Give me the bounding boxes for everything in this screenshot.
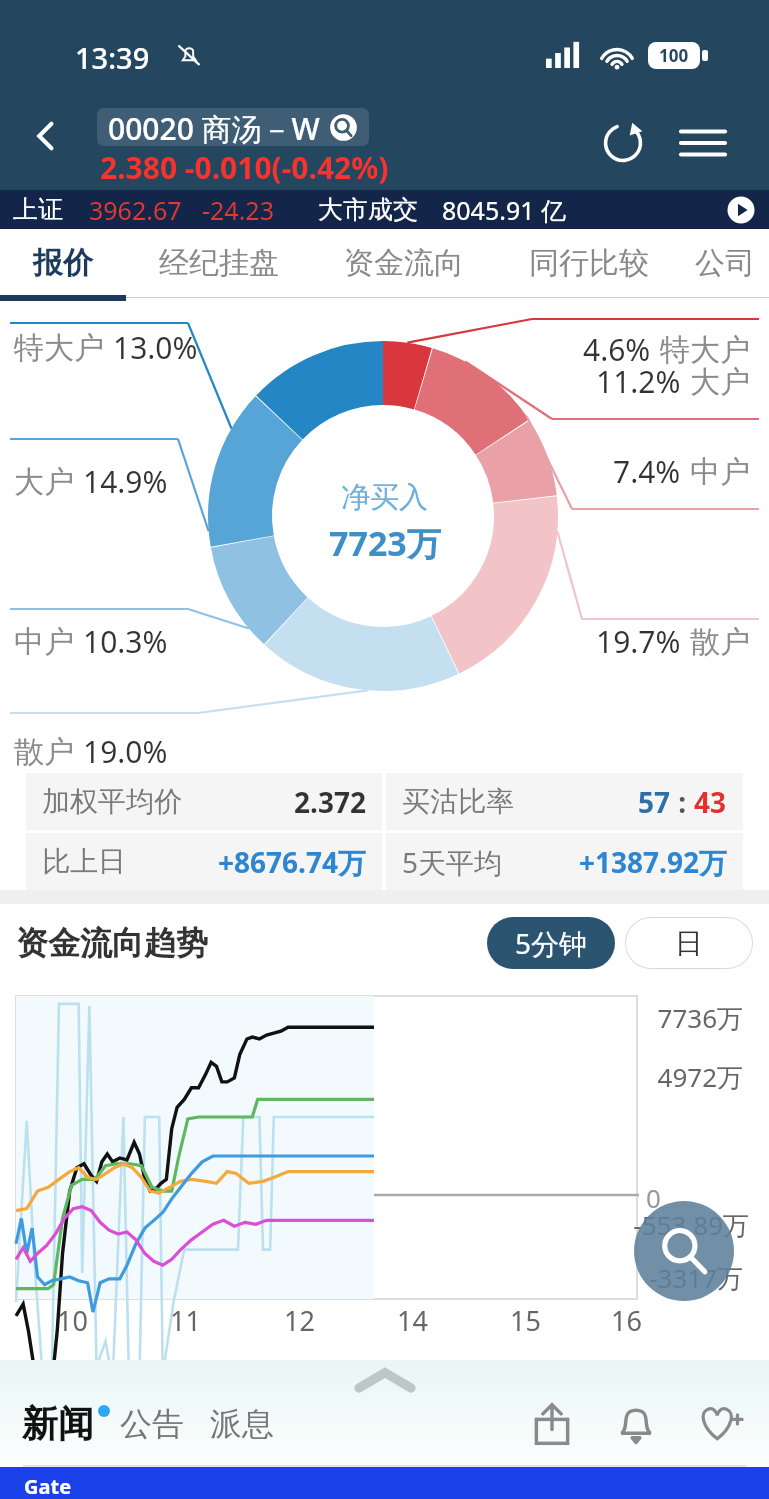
staticText: 2.372 [294, 783, 366, 821]
staticText: 公司 [695, 244, 755, 282]
button[interactable]: Refresh [592, 112, 654, 174]
staticText: 7.4% [613, 451, 681, 492]
button[interactable]: Share [521, 1393, 583, 1455]
staticText: 资金流向 [344, 244, 464, 282]
staticText: 新闻 [22, 1401, 94, 1446]
staticText: 7736万 [0, 1000, 743, 1036]
staticText: 19.7% [596, 621, 681, 662]
staticText: -24.23 [202, 193, 274, 227]
button[interactable]: 新闻 [22, 1401, 94, 1446]
staticText: -3317万 [0, 1260, 743, 1296]
staticText: 11 [170, 1302, 201, 1339]
button[interactable]: 加权平均价 [26, 773, 382, 830]
button[interactable]: 资金流向 [311, 229, 496, 297]
staticText: 大户 [690, 363, 750, 401]
staticText: 净买入 [341, 479, 428, 516]
staticText: 比上日 [42, 844, 126, 879]
staticText: 43 [694, 783, 727, 821]
button[interactable]: Back [18, 108, 74, 164]
staticText: 13:39 [75, 38, 150, 77]
staticText: -553.89万 [0, 1207, 749, 1243]
staticText: 上证 [13, 194, 63, 225]
staticText: Gate [24, 1473, 72, 1499]
staticText: 16 [611, 1302, 642, 1339]
staticText: : [671, 783, 694, 821]
staticText: 15 [510, 1302, 541, 1339]
staticText: 特大户 [660, 331, 750, 369]
staticText: 报价 [33, 244, 93, 282]
button[interactable]: 公告 [120, 1404, 184, 1444]
staticText: 57 [638, 783, 671, 821]
button[interactable]: 派息 [210, 1404, 274, 1444]
staticText: 加权平均价 [42, 784, 182, 819]
staticText: 8045.91 亿 [442, 193, 567, 227]
staticText: 5天平均 [402, 843, 503, 881]
staticText: 7723万 [329, 520, 441, 566]
staticText: +1387.92万 [579, 843, 727, 881]
staticText: 100 [659, 44, 689, 67]
staticText: 散户 [690, 623, 750, 661]
staticText: 12 [284, 1302, 315, 1339]
button[interactable]: 报价 [0, 229, 126, 297]
button[interactable]: Search [634, 1201, 734, 1301]
button[interactable]: 5天平均 [386, 833, 743, 890]
button[interactable]: Menu [672, 112, 734, 174]
staticText: 大市成交 [318, 194, 418, 225]
staticText: 5分钟 [515, 924, 588, 962]
button[interactable]: Add to watchlist [689, 1393, 751, 1455]
staticText: 公告 [120, 1404, 184, 1444]
staticText: 00020 商汤－W [108, 108, 320, 146]
staticText: 10 [57, 1302, 88, 1339]
button[interactable]: 公司 [681, 229, 769, 297]
staticText: 日 [675, 926, 703, 961]
staticText: 13.0% [113, 327, 198, 368]
button[interactable]: 经纪挂盘 [126, 229, 311, 297]
staticText: 中户 [690, 453, 750, 491]
staticText: 2.380 -0.010(-0.42%) [100, 147, 389, 188]
button[interactable]: 比上日 [26, 833, 382, 890]
button[interactable]: 00020 商汤－W [97, 108, 369, 146]
staticText: 散户 [14, 733, 74, 771]
staticText: 4972万 [0, 1059, 743, 1095]
staticText: 同行比较 [529, 244, 649, 282]
staticText: 4.6% [583, 329, 651, 370]
button[interactable]: 同行比较 [496, 229, 681, 297]
staticText: +8676.74万 [218, 843, 366, 881]
staticText: 19.0% [83, 731, 168, 772]
staticText: 14.9% [83, 461, 168, 502]
button[interactable]: 上证 [0, 190, 769, 229]
staticText: 经纪挂盘 [159, 244, 279, 282]
button[interactable]: 买沽比率 [386, 773, 743, 830]
button[interactable]: Alerts [605, 1393, 667, 1455]
staticText: 10.3% [83, 621, 168, 662]
staticText: 大户 [14, 463, 74, 501]
button[interactable]: 日 [625, 917, 753, 969]
button[interactable]: 5分钟 [487, 917, 615, 969]
staticText: 0 [646, 1180, 661, 1215]
staticText: 派息 [210, 1404, 274, 1444]
staticText: 11.2% [596, 361, 681, 402]
staticText: 买沽比率 [402, 784, 514, 819]
staticText: 资金流向趋势 [16, 923, 208, 963]
staticText: 特大户 [14, 329, 104, 367]
staticText: 14 [397, 1302, 428, 1339]
staticText: 中户 [14, 623, 74, 661]
button[interactable]: Next [726, 195, 756, 225]
staticText: 3962.67 [89, 193, 182, 227]
